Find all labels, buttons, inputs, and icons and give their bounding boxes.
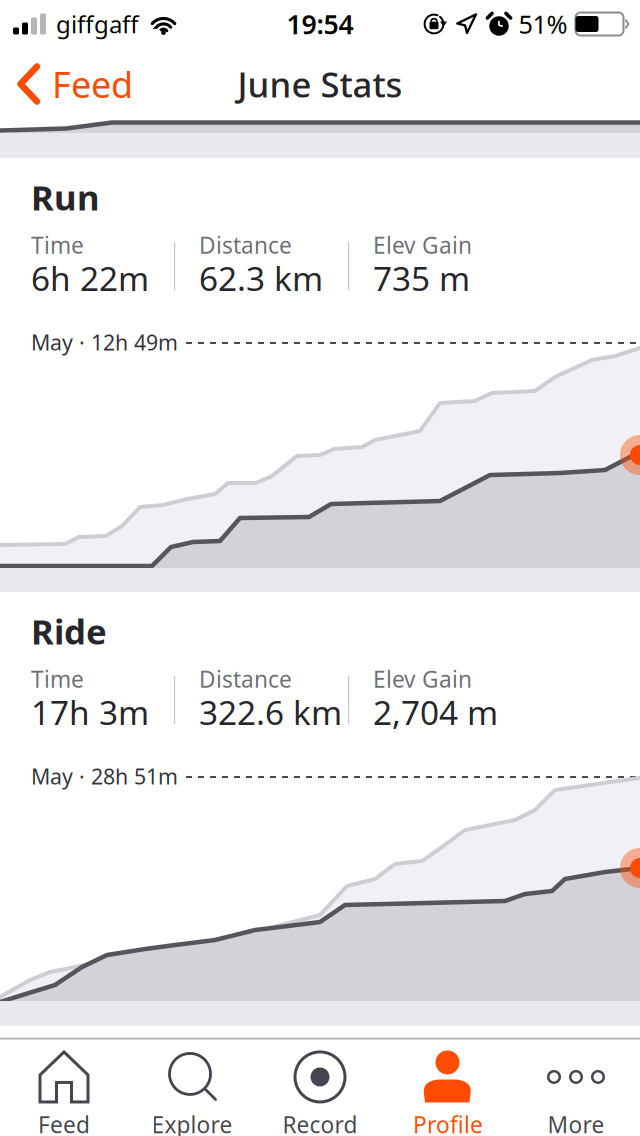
staticText: May · 12h 49m [31,328,178,356]
staticText: Time [31,230,84,260]
staticText: 735 m [373,256,470,300]
staticText: Record [282,1109,357,1136]
staticText: Elev Gain [373,664,472,694]
staticText: giffgaff [56,8,139,40]
staticText: 17h 3m [31,690,149,734]
staticText: 51% [518,7,567,41]
staticText: 62.3 km [199,256,323,300]
staticText: Distance [199,664,292,694]
staticText: Distance [199,230,292,260]
staticText: Run [31,174,100,220]
staticText: 2,704 m [373,690,498,734]
button[interactable]: Profile [384,1038,512,1136]
staticText: 19:54 [286,6,353,42]
staticText: June Stats [237,61,402,107]
staticText: Ride [31,608,107,654]
staticText: More [547,1109,604,1136]
staticText: Explore [151,1109,232,1136]
button[interactable]: Feed [0,1038,128,1136]
staticText: Elev Gain [373,230,472,260]
staticText: Feed [52,60,133,108]
staticText: May · 28h 51m [31,762,178,790]
button[interactable]: Record [256,1038,384,1136]
staticText: 6h 22m [31,256,149,300]
button[interactable]: More [512,1038,640,1136]
staticText: 322.6 km [199,690,342,734]
button[interactable]: Explore [128,1038,256,1136]
staticText: Feed [38,1109,90,1136]
button[interactable]: Feed [0,48,147,120]
staticText: Time [31,664,84,694]
staticText: Profile [413,1109,483,1136]
